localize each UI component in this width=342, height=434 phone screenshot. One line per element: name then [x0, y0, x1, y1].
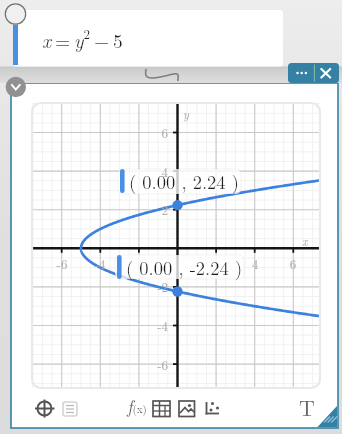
staticText: -6	[128, 355, 168, 371]
staticText: ( 0.00 , -2.24 )	[126, 254, 243, 280]
button[interactable]: Scatter plot	[203, 399, 222, 418]
staticText: 6	[128, 123, 168, 139]
button[interactable]: Collapse panel	[3, 75, 27, 99]
button[interactable]: Move graphics view	[32, 396, 58, 422]
staticText: -4	[80, 254, 120, 270]
staticText: x	[302, 232, 308, 249]
button[interactable]: Image	[177, 399, 196, 418]
staticText: 6	[273, 254, 313, 270]
button[interactable]: Text tool	[293, 397, 317, 421]
button[interactable]: Function	[124, 398, 146, 420]
staticText: 4	[235, 254, 275, 270]
staticText: 4	[128, 162, 168, 178]
button[interactable]: Algebra view	[61, 398, 81, 418]
staticText: 2	[128, 200, 168, 216]
button[interactable]: More options	[288, 63, 314, 83]
staticText: ( 0.00 , 2.24 )	[129, 168, 239, 194]
staticText: -6	[42, 254, 82, 270]
button[interactable]: Drag handle	[4, 3, 27, 26]
staticText: -2	[128, 277, 168, 293]
staticText: T	[299, 391, 315, 422]
staticText: f(x)	[127, 393, 147, 418]
button[interactable]: Close	[314, 63, 339, 83]
button[interactable]: Table	[151, 399, 171, 418]
staticText: x = y2 − 5	[42, 24, 123, 53]
staticText: -4	[128, 316, 168, 332]
staticText: y	[183, 105, 189, 122]
